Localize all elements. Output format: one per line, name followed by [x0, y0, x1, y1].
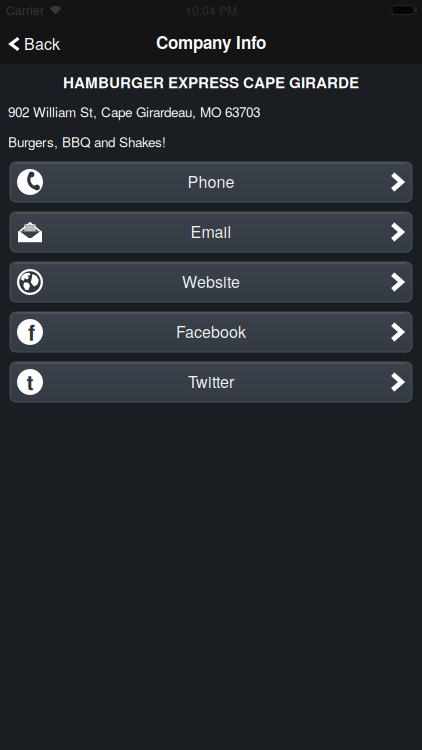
button[interactable]: Email: [10, 212, 412, 252]
staticText: Twitter: [188, 369, 234, 392]
staticText: Email: [190, 219, 231, 242]
staticText: f: [28, 317, 35, 347]
staticText: 902 William St, Cape Girardeau, MO 63703: [8, 102, 260, 121]
staticText: HAMBURGER EXPRESS CAPE GIRARDE: [63, 71, 359, 93]
staticText: 10:04 PM: [185, 1, 237, 19]
staticText: t: [26, 366, 33, 397]
staticText: Back: [24, 31, 60, 54]
button[interactable]: Facebook: [10, 312, 412, 352]
button[interactable]: Back: [0, 30, 60, 53]
button[interactable]: Twitter: [10, 362, 412, 402]
staticText: Burgers, BBQ and Shakes!: [8, 132, 166, 151]
staticText: Company Info: [156, 30, 266, 54]
button[interactable]: Website: [10, 262, 412, 302]
staticText: Facebook: [176, 319, 246, 342]
staticText: Website: [182, 269, 240, 292]
staticText: Phone: [187, 169, 234, 192]
staticText: Carrier: [6, 1, 44, 19]
button[interactable]: Phone: [10, 162, 412, 202]
